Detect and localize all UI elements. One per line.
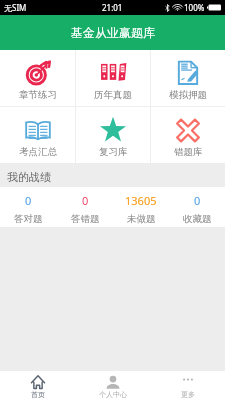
button[interactable]: 章节练习 [0, 50, 75, 106]
staticText: 复习库 [99, 146, 128, 158]
button[interactable]: 历年真题 [76, 50, 150, 106]
staticText: 首页 [31, 390, 45, 399]
staticText: 历年真题 [94, 89, 132, 101]
staticText: 收藏题 [183, 213, 212, 225]
staticText: 我的战绩 [7, 170, 51, 184]
button[interactable]: 0 [169, 187, 225, 227]
staticText: 21:01 [102, 2, 123, 13]
staticText: 答错题 [71, 213, 100, 225]
button[interactable]: 模拟押题 [151, 50, 225, 106]
staticText: 0 [82, 193, 89, 208]
staticText: 个人中心 [99, 390, 127, 399]
staticText: 0 [194, 193, 201, 208]
staticText: 考点汇总 [19, 146, 57, 158]
staticText: 模拟押题 [169, 89, 207, 101]
staticText: 更多 [181, 390, 195, 399]
button[interactable]: More [150, 371, 225, 400]
staticText: 错题库 [174, 146, 203, 158]
button[interactable]: 考点汇总 [0, 107, 75, 163]
button[interactable]: 错题库 [151, 107, 225, 163]
staticText: 100% [184, 2, 205, 13]
staticText: 章节练习 [19, 89, 57, 101]
button[interactable]: Home [0, 371, 75, 400]
button[interactable]: 0 [0, 187, 57, 227]
staticText: 基金从业赢题库 [71, 25, 155, 40]
staticText: 未做题 [127, 213, 156, 225]
button[interactable]: 13605 [113, 187, 169, 227]
staticText: 13605 [125, 193, 157, 208]
button[interactable]: Profile [75, 371, 150, 400]
staticText: 答对题 [14, 213, 43, 225]
staticText: 0 [25, 193, 32, 208]
button[interactable]: 复习库 [76, 107, 150, 163]
button[interactable]: 0 [57, 187, 113, 227]
staticText: 无SIM [4, 2, 27, 13]
